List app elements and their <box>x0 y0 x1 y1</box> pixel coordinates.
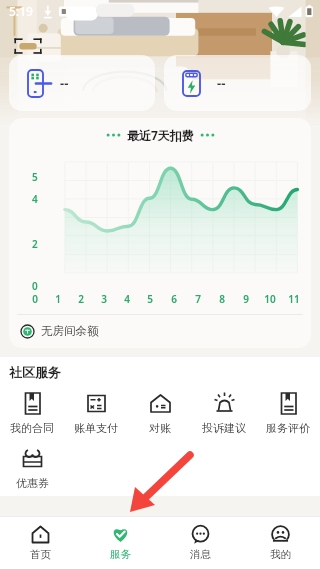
staticText: 首页 <box>30 548 51 561</box>
staticText: 2 <box>78 292 84 306</box>
button[interactable]: 优惠券 <box>0 444 64 492</box>
other: Battery status <box>182 70 201 97</box>
button[interactable]: 对账 <box>128 389 192 437</box>
other: Smart door lock <box>27 69 44 98</box>
staticText: 0 <box>32 292 38 306</box>
staticText: 3 <box>101 292 107 306</box>
staticText: 10 <box>264 292 276 306</box>
staticText: 优惠券 <box>16 476 49 490</box>
staticText: 9 <box>243 292 249 306</box>
staticText: 最近7天扣费 <box>127 127 194 143</box>
staticText: 1 <box>55 292 61 306</box>
staticText: 4 <box>32 192 38 206</box>
button[interactable]: Smart door lock <box>9 55 155 111</box>
staticText: 4 <box>124 292 130 306</box>
staticText: 0 <box>32 279 38 293</box>
staticText: 无房间余额 <box>41 324 99 338</box>
button[interactable]: 投诉建议 <box>192 389 256 437</box>
button[interactable]: Battery status <box>164 55 311 111</box>
staticText: -- <box>60 74 69 92</box>
staticText: 账单支付 <box>74 421 118 435</box>
button[interactable]: 无房间余额 <box>9 324 311 340</box>
staticText: 5:19 <box>9 3 33 19</box>
button[interactable]: 消息 <box>160 517 240 569</box>
staticText: 我的 <box>270 548 291 561</box>
staticText: -- <box>217 74 226 92</box>
staticText: 5 <box>147 292 153 306</box>
button[interactable]: 服务 <box>80 517 160 569</box>
staticText: 对账 <box>149 421 171 435</box>
staticText: 8 <box>219 292 225 306</box>
staticText: 5 <box>32 170 38 184</box>
staticText: 2 <box>32 237 38 251</box>
staticText: 我的合同 <box>10 421 54 435</box>
button[interactable]: 服务评价 <box>256 389 320 437</box>
staticText: 服务 <box>110 548 131 561</box>
staticText: 社区服务 <box>9 364 61 380</box>
button[interactable]: 我的 <box>240 517 320 569</box>
staticText: 消息 <box>190 548 211 561</box>
button[interactable]: 我的合同 <box>0 389 64 437</box>
button[interactable]: 首页 <box>0 517 80 569</box>
staticText: 投诉建议 <box>202 421 246 435</box>
staticText: 服务评价 <box>266 421 310 435</box>
staticText: 11 <box>288 292 300 306</box>
button[interactable]: 账单支付 <box>64 389 128 437</box>
staticText: 6 <box>171 292 177 306</box>
staticText: 7 <box>195 292 201 306</box>
